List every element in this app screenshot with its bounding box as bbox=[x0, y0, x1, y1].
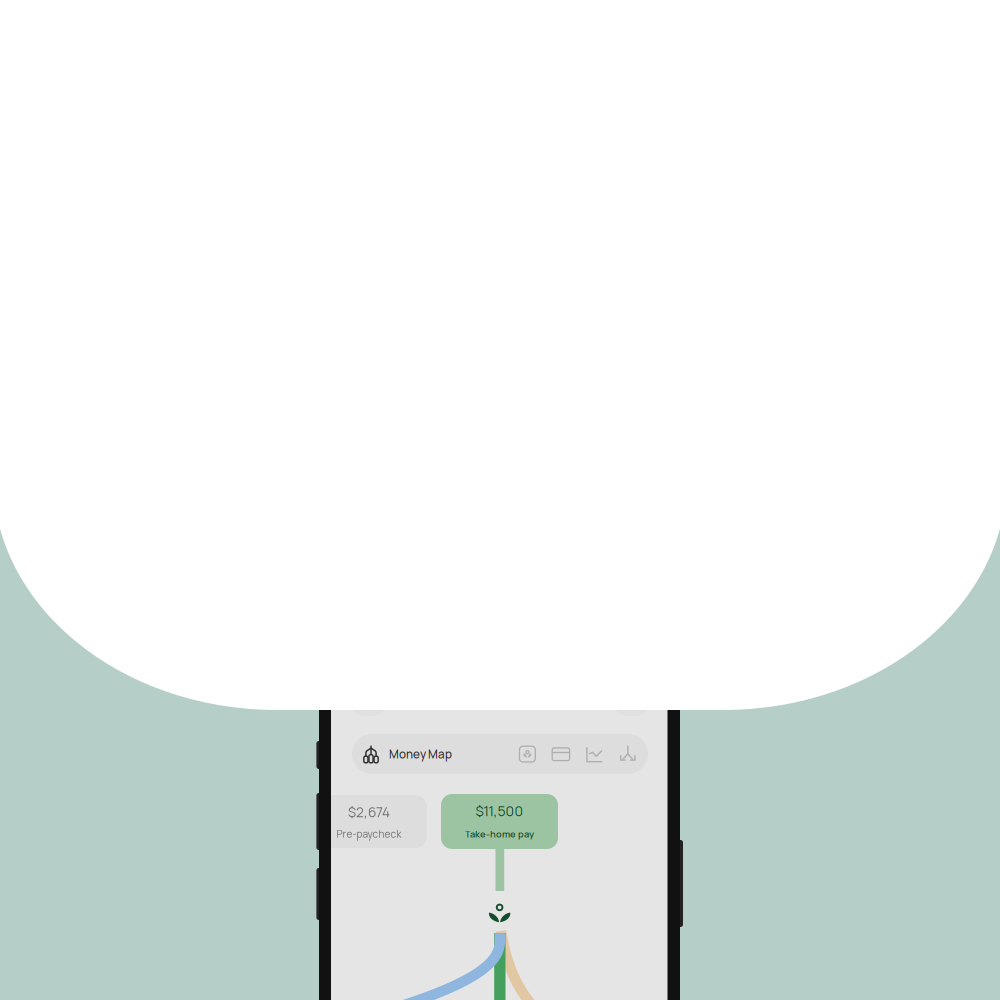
button[interactable]: $11,500 bbox=[0, 0, 1000, 1000]
button[interactable]: $2,674 bbox=[0, 0, 1000, 1000]
staticText: $2,674 bbox=[348, 803, 390, 821]
button[interactable]: Investments bbox=[0, 0, 1000, 1000]
button[interactable]: Savings bbox=[0, 0, 1000, 1000]
staticText: Money Map bbox=[389, 746, 452, 762]
button[interactable]: Spending bbox=[0, 0, 1000, 1000]
staticText: $11,500 bbox=[475, 801, 523, 820]
button[interactable]: Cards bbox=[0, 0, 1000, 1000]
staticText: Take-home pay bbox=[465, 828, 534, 840]
button[interactable]: Money Map bbox=[0, 0, 1000, 1000]
staticText: Pre-paycheck bbox=[336, 827, 401, 841]
